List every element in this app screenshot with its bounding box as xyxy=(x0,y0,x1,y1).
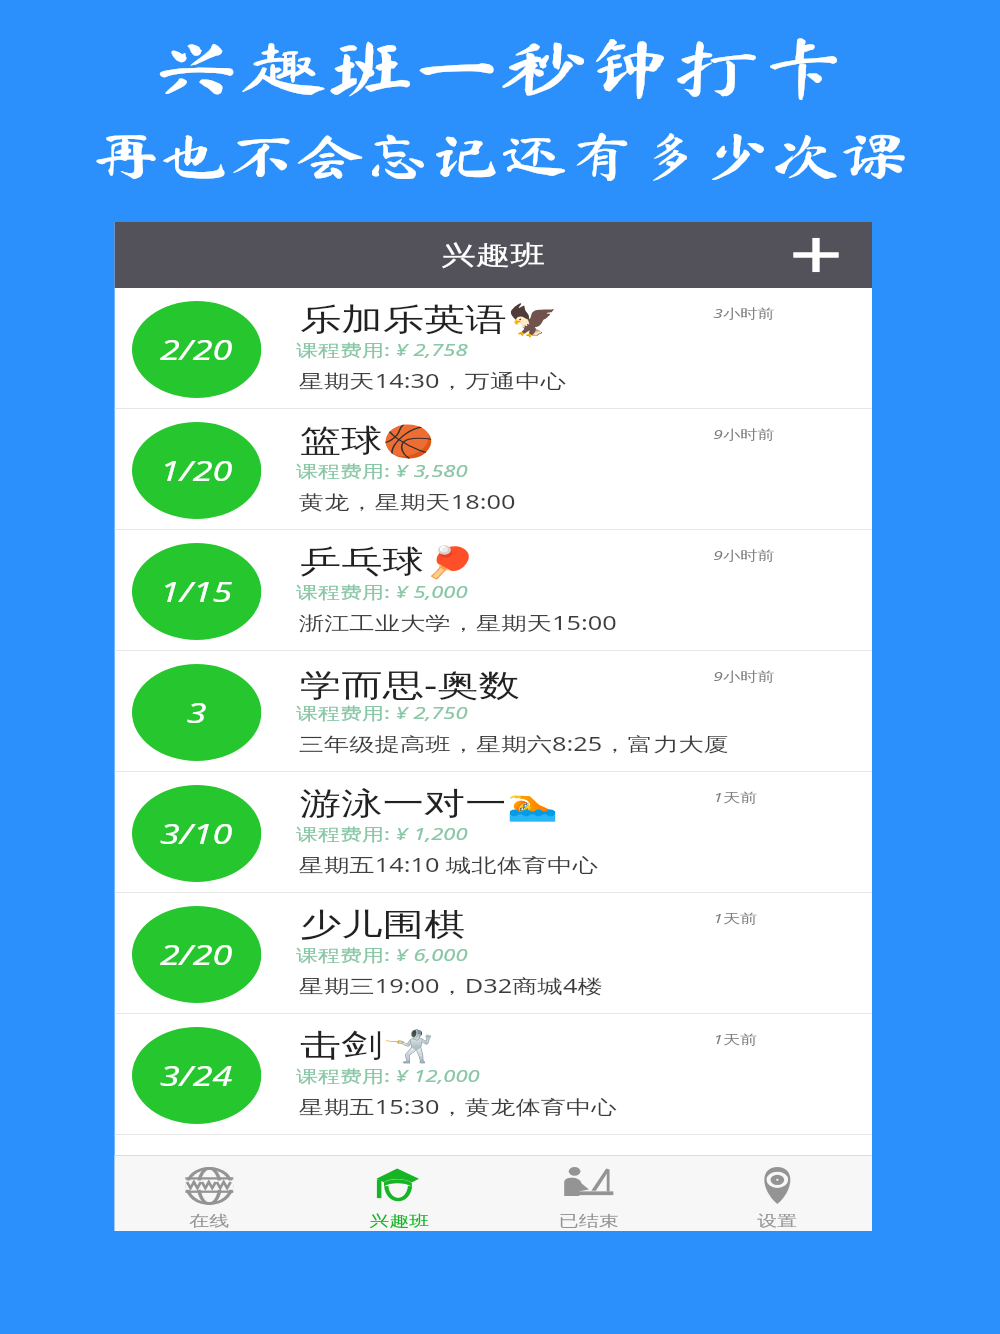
button[interactable]: 1/15 xyxy=(115,530,872,651)
staticText: 兴趣班一秒钟打卡 xyxy=(153,35,848,100)
staticText: 9小时前 xyxy=(713,546,776,564)
staticText: 2/20 xyxy=(160,936,233,973)
staticText: 少儿围棋 xyxy=(300,905,465,944)
staticText: 🏀 xyxy=(383,423,435,459)
button[interactable]: 兴趣班 xyxy=(304,1156,493,1231)
staticText: 星期五14:10 城北体育中心 xyxy=(299,852,599,878)
staticText: 课程费用: ¥ 12,000 xyxy=(296,1064,480,1087)
staticText: 9小时前 xyxy=(713,425,776,443)
staticText: 击剑 xyxy=(300,1026,383,1065)
button[interactable]: 2/20 xyxy=(115,893,872,1014)
staticText: 课程费用: ¥ 2,758 xyxy=(296,338,468,361)
staticText: 1/20 xyxy=(160,452,233,489)
staticText: 课程费用: ¥ 2,750 xyxy=(296,701,468,724)
staticText: 浙江工业大学，星期天15:00 xyxy=(299,610,617,636)
staticText: 1天前 xyxy=(713,1030,759,1048)
button[interactable]: 2/20 xyxy=(115,288,872,409)
button[interactable]: 3/10 xyxy=(115,772,872,893)
staticText: 黄龙，星期天18:00 xyxy=(299,489,516,515)
staticText: 已结束 xyxy=(559,1212,619,1231)
staticText: 三年级提高班，星期六8:25，富力大厦 xyxy=(299,731,729,757)
staticText: 3小时前 xyxy=(713,304,776,322)
staticText: 1天前 xyxy=(713,909,759,927)
staticText: 在线 xyxy=(189,1212,229,1231)
staticText: 9小时前 xyxy=(713,667,776,685)
button[interactable]: 已结束 xyxy=(493,1156,683,1231)
button[interactable]: Add class xyxy=(784,231,848,279)
staticText: 乒乓球 xyxy=(300,542,424,581)
staticText: 篮球 xyxy=(300,421,383,460)
staticText: 兴趣班 xyxy=(441,239,545,272)
staticText: 乐加乐英语 xyxy=(300,300,507,339)
button[interactable]: 3/24 xyxy=(115,1014,872,1135)
staticText: 2/20 xyxy=(160,331,233,368)
staticText: 课程费用: ¥ 1,200 xyxy=(296,822,468,845)
staticText: 游泳一对一 xyxy=(300,784,507,823)
staticText: 🦅 xyxy=(507,302,559,338)
staticText: 星期天14:30，万通中心 xyxy=(299,368,567,394)
staticText: 课程费用: ¥ 5,000 xyxy=(296,580,468,603)
button[interactable]: 在线 xyxy=(115,1156,304,1231)
staticText: 3/24 xyxy=(160,1057,233,1094)
staticText: 设置 xyxy=(757,1212,797,1231)
button[interactable]: 3 xyxy=(115,651,872,772)
staticText: 学而思-奥数 xyxy=(300,663,520,705)
staticText: 🤺 xyxy=(383,1028,435,1064)
staticText: 1/15 xyxy=(160,573,233,610)
staticText: 课程费用: ¥ 3,580 xyxy=(296,459,468,482)
staticText: 🏊 xyxy=(507,786,559,822)
staticText: 1天前 xyxy=(713,788,759,806)
staticText: 3/10 xyxy=(160,815,233,852)
staticText: 兴趣班 xyxy=(369,1212,429,1231)
staticText: 课程费用: ¥ 6,000 xyxy=(296,943,468,966)
staticText: 🏓 xyxy=(424,544,476,580)
staticText: 再也不会忘记还有多少次课 xyxy=(92,130,909,181)
staticText: 3 xyxy=(187,694,207,731)
button[interactable]: 设置 xyxy=(683,1156,872,1231)
button[interactable]: 1/20 xyxy=(115,409,872,530)
staticText: 星期五15:30，黄龙体育中心 xyxy=(299,1094,617,1120)
staticText: 星期三19:00，D32商城4楼 xyxy=(299,973,604,999)
